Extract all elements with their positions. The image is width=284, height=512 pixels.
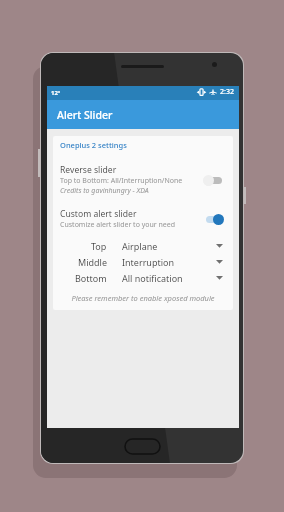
button[interactable]: Switch off xyxy=(203,173,224,187)
staticText: Reverse slider xyxy=(60,164,117,176)
staticText: Top to Bottom: All/Interruption/None xyxy=(60,176,183,186)
button[interactable]: Middle xyxy=(53,254,233,270)
button[interactable]: Switch on xyxy=(203,212,224,226)
button[interactable]: Reverse slider xyxy=(53,164,233,196)
button[interactable]: Top xyxy=(53,238,233,254)
staticText: Bottom xyxy=(75,272,107,284)
button[interactable]: Custom alert slider xyxy=(53,208,233,230)
staticText: Top xyxy=(91,240,107,252)
staticText: Custom alert slider xyxy=(60,208,137,220)
staticText: Please remember to enable xposed module xyxy=(53,293,233,303)
staticText: Alert Slider xyxy=(57,108,113,122)
staticText: Credits to gavinhungry - XDA xyxy=(60,186,149,196)
staticText: Oneplus 2 settings xyxy=(60,140,127,150)
staticText: 2:32 xyxy=(220,87,234,97)
staticText: Airplane xyxy=(122,240,216,252)
staticText: 12° xyxy=(51,89,61,97)
staticText: All notification xyxy=(122,272,216,284)
staticText: Customize alert slider to your need xyxy=(60,220,176,230)
button[interactable]: Bottom xyxy=(53,270,233,286)
staticText: Interruption xyxy=(122,256,216,268)
staticText: Middle xyxy=(78,256,107,268)
